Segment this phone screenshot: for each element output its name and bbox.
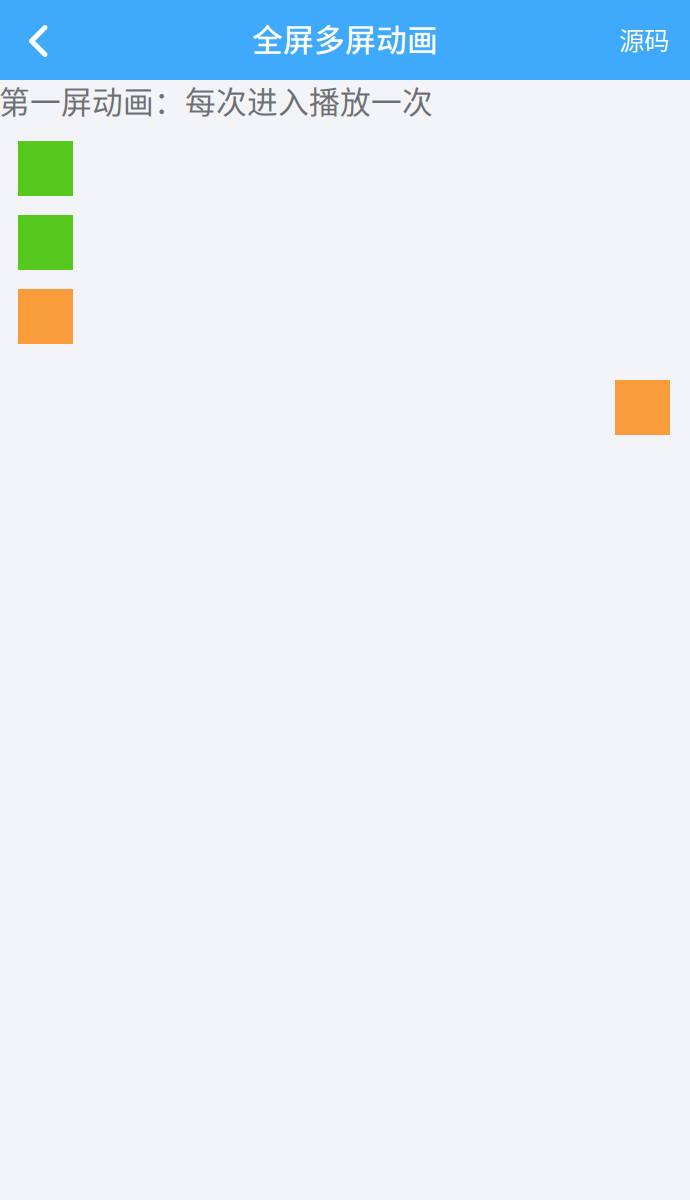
staticText: 源码: [619, 21, 669, 57]
button[interactable]: Back: [0, 0, 80, 80]
button[interactable]: 源码: [590, 0, 690, 80]
staticText: 全屏多屏动画: [252, 16, 438, 60]
staticText: 第一屏动画：每次进入播放一次: [0, 78, 433, 122]
